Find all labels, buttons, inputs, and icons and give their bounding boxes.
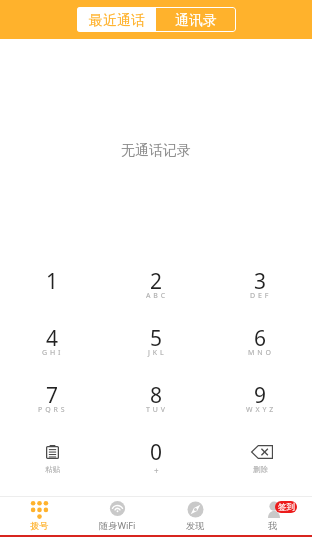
staticText: JKL [148,348,167,358]
button[interactable]: 2 [104,257,208,314]
button[interactable]: 最近通话 [77,7,156,32]
button[interactable]: 拨号 [0,497,78,535]
button[interactable]: 7 [0,371,104,428]
staticText: 删除 [253,465,268,474]
button[interactable]: 3 [208,257,312,314]
staticText: TUV [146,405,168,415]
staticText: DEF [250,291,272,301]
button[interactable]: Delete [208,428,312,485]
staticText: 1 [46,267,59,296]
staticText: 0 [150,438,163,467]
button[interactable]: 签到 [234,497,312,535]
staticText: 8 [150,381,163,410]
staticText: MNO [248,348,274,358]
staticText: WXYZ [246,405,277,415]
staticText: 5 [150,324,163,353]
staticText: 粘贴 [45,465,60,474]
staticText: PQRS [38,405,68,415]
button[interactable]: 发现 [156,497,234,535]
button[interactable]: Paste [0,428,104,485]
button[interactable]: 0 [104,428,208,485]
button[interactable]: 6 [208,314,312,371]
button[interactable]: 9 [208,371,312,428]
button[interactable]: 4 [0,314,104,371]
staticText: + [154,465,159,476]
button[interactable]: 随身WiFi [78,497,156,535]
staticText: 7 [46,381,59,410]
staticText: 我 [268,520,278,532]
staticText: 签到 [278,502,295,513]
button[interactable]: 5 [104,314,208,371]
staticText: 最近通话 [89,12,145,30]
staticText: 3 [254,267,267,296]
staticText: GHI [42,348,64,358]
staticText: 6 [254,324,267,353]
button[interactable]: 8 [104,371,208,428]
staticText: 拨号 [30,520,49,532]
staticText: 通讯录 [175,12,217,30]
staticText: 9 [254,381,267,410]
staticText: ABC [146,291,169,301]
staticText: 发现 [186,520,205,532]
staticText: 随身WiFi [99,519,136,532]
staticText: 2 [150,267,163,296]
staticText: 无通话记录 [121,142,191,160]
button[interactable]: 通讯录 [156,7,236,32]
button[interactable]: 1 [0,257,104,314]
staticText: 4 [46,324,59,353]
